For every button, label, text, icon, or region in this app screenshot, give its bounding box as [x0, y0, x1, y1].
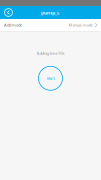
button[interactable]: Add mode: [0, 19, 101, 31]
staticText: Add mode: [4, 22, 22, 28]
staticText: Manual mode: [68, 22, 92, 28]
staticText: pump_c: [41, 9, 60, 16]
button[interactable]: Start: [38, 66, 63, 91]
staticText: Adding time:10s: [36, 50, 64, 56]
button[interactable]: Back: [0, 6, 18, 19]
staticText: Start: [46, 76, 54, 81]
